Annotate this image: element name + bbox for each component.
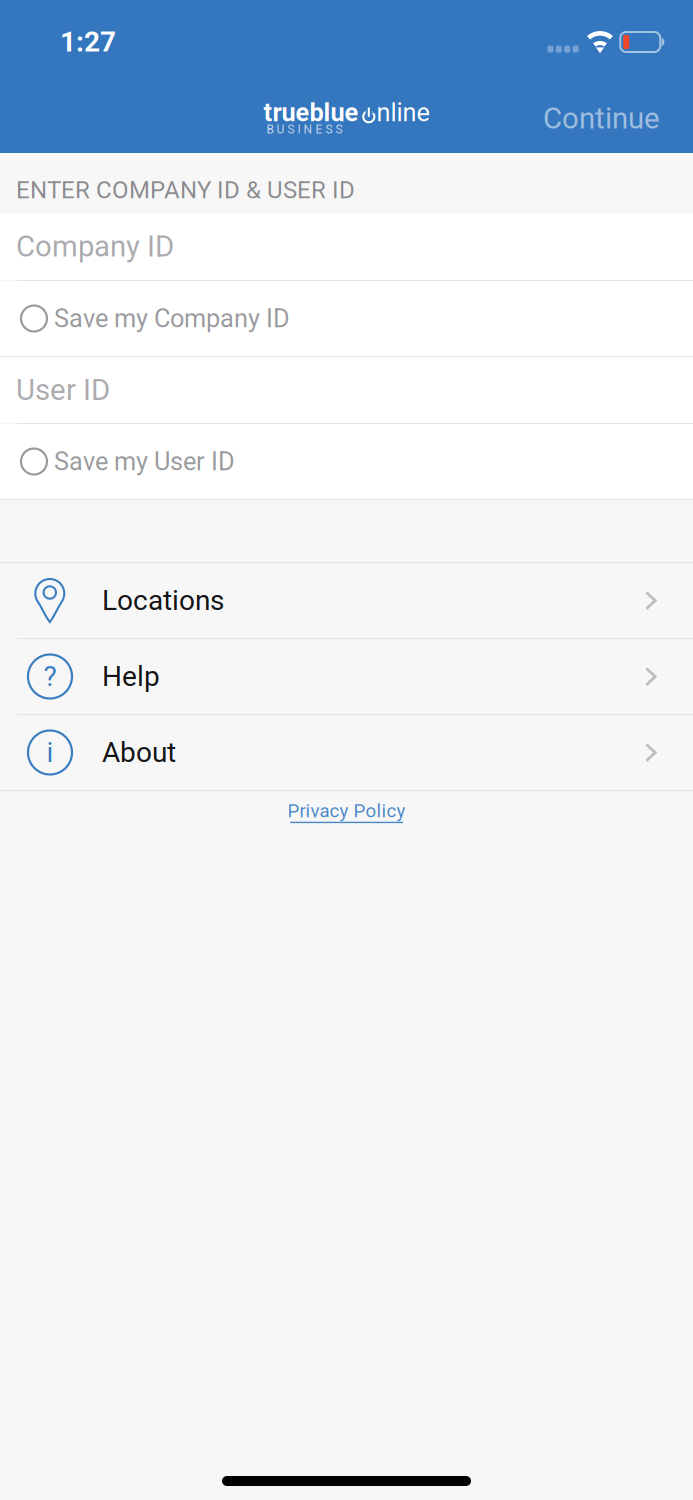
staticText: Company ID bbox=[16, 229, 174, 264]
staticText: B U S I N E S S bbox=[266, 122, 342, 137]
staticText: Privacy Policy bbox=[287, 800, 405, 822]
staticText: Continue bbox=[543, 101, 660, 136]
button[interactable]: Locations bbox=[0, 563, 693, 638]
button[interactable]: i bbox=[0, 715, 693, 790]
button[interactable]: User ID bbox=[0, 357, 693, 423]
staticText: 1:27 bbox=[60, 26, 116, 58]
staticText: Help bbox=[102, 660, 160, 693]
staticText: About bbox=[102, 736, 176, 769]
staticText: ? bbox=[43, 660, 56, 693]
button[interactable]: Continue bbox=[543, 88, 660, 148]
button[interactable]: ? bbox=[0, 639, 693, 714]
staticText: nline bbox=[376, 98, 429, 127]
button[interactable]: Privacy Policy bbox=[287, 791, 405, 832]
staticText: User ID bbox=[16, 373, 110, 407]
staticText: Save my Company ID bbox=[54, 304, 290, 333]
button[interactable]: Company ID bbox=[0, 213, 693, 280]
button[interactable]: Save my User ID bbox=[0, 424, 693, 499]
staticText: ENTER COMPANY ID & USER ID bbox=[16, 176, 355, 204]
staticText: Locations bbox=[102, 584, 224, 617]
button[interactable]: Save my Company ID bbox=[0, 281, 693, 356]
staticText: trueblue bbox=[263, 98, 358, 127]
staticText: i bbox=[46, 736, 53, 769]
staticText: Save my User ID bbox=[54, 447, 235, 476]
